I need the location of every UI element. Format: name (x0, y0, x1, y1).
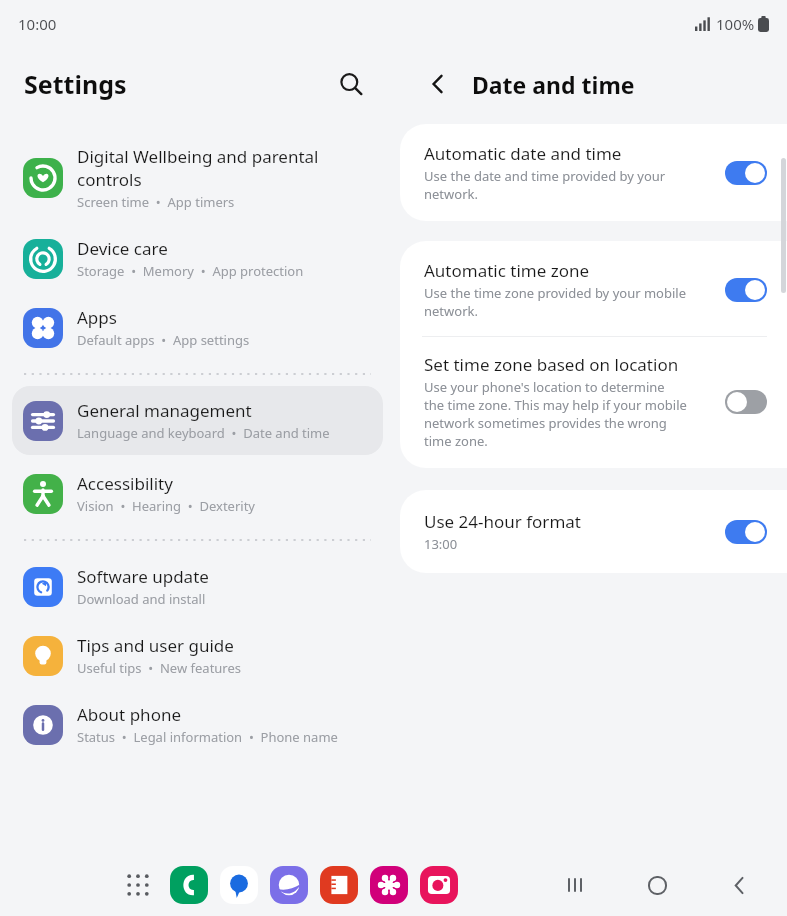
button[interactable]: On (725, 161, 767, 185)
button[interactable]: Digital Wellbeing and parental (12, 132, 383, 224)
button[interactable]: On (725, 520, 767, 544)
staticText: Storage • Memory • App protection (77, 262, 304, 280)
staticText: Default apps • App settings (77, 331, 250, 349)
staticText: network. (424, 185, 478, 203)
button[interactable]: General management (12, 386, 383, 455)
button[interactable]: Home (629, 857, 685, 913)
staticText: Settings (24, 67, 127, 101)
staticText: network sometimes provides the wrong (424, 414, 667, 432)
button[interactable]: Off (725, 390, 767, 414)
button[interactable]: Device care (12, 224, 383, 293)
staticText: Digital Wellbeing and parental (77, 145, 319, 168)
staticText: 13:00 (424, 535, 458, 553)
staticText: Automatic date and time (424, 142, 622, 165)
button[interactable]: Phone (170, 866, 208, 904)
button[interactable]: Accessibility (12, 459, 383, 528)
button[interactable]: Back (711, 857, 767, 913)
staticText: About phone (77, 703, 182, 726)
staticText: Language and keyboard • Date and time (77, 424, 330, 442)
button[interactable]: Gallery (370, 866, 408, 904)
button[interactable]: All apps (118, 865, 158, 905)
button[interactable]: Automatic time zone (400, 241, 787, 336)
button[interactable]: Automatic date and time (400, 124, 787, 221)
button[interactable]: Software update (12, 552, 383, 621)
staticText: Screen time • App timers (77, 193, 235, 211)
staticText: Use the date and time provided by your (424, 167, 666, 185)
staticText: Status • Legal information • Phone name (77, 728, 338, 746)
staticText: Automatic time zone (424, 259, 590, 282)
staticText: Use your phone's location to determine (424, 378, 665, 396)
button[interactable]: Back (417, 63, 459, 105)
button[interactable]: Notes (320, 866, 358, 904)
staticText: the time zone. This may help if your mob… (424, 396, 687, 414)
staticText: Accessibility (77, 472, 173, 495)
button[interactable]: On (725, 278, 767, 302)
staticText: Software update (77, 565, 209, 588)
staticText: Download and install (77, 590, 206, 608)
staticText: Set time zone based on location (424, 353, 679, 376)
staticText: 10:00 (18, 14, 57, 34)
button[interactable]: Use 24-hour format (400, 490, 787, 573)
button[interactable]: About phone (12, 690, 383, 759)
staticText: General management (77, 399, 252, 422)
button[interactable]: Recents (547, 857, 603, 913)
staticText: Vision • Hearing • Dexterity (77, 497, 255, 515)
button[interactable]: Messages (220, 866, 258, 904)
staticText: 100% (716, 14, 755, 34)
staticText: time zone. (424, 432, 488, 450)
button[interactable]: Tips and user guide (12, 621, 383, 690)
staticText: Apps (77, 306, 117, 329)
button[interactable]: Set time zone based on location (400, 337, 787, 468)
staticText: Device care (77, 237, 168, 260)
staticText: Date and time (472, 69, 635, 100)
staticText: controls (77, 168, 142, 191)
staticText: Tips and user guide (77, 634, 234, 657)
staticText: network. (424, 302, 478, 320)
button[interactable]: Apps (12, 293, 383, 362)
button[interactable]: Internet (270, 866, 308, 904)
staticText: Use 24-hour format (424, 510, 581, 533)
button[interactable]: Search (329, 62, 373, 106)
button[interactable]: Camera (420, 866, 458, 904)
staticText: Use the time zone provided by your mobil… (424, 284, 686, 302)
staticText: Useful tips • New features (77, 659, 242, 677)
